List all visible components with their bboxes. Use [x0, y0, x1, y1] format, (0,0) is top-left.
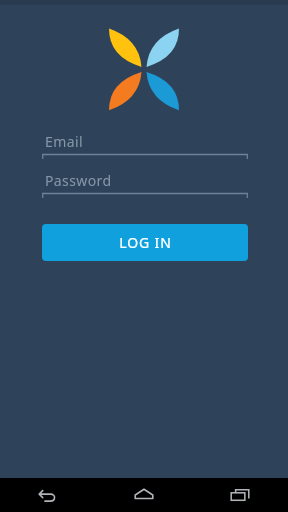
button[interactable]: LOG IN — [42, 224, 248, 261]
button[interactable]: Email — [42, 132, 248, 160]
button[interactable]: Home — [96, 478, 192, 512]
button[interactable]: Back — [0, 478, 96, 512]
staticText: Email — [45, 132, 83, 151]
button[interactable]: Password — [42, 171, 248, 199]
staticText: Password — [45, 171, 112, 190]
button[interactable]: Recent apps — [192, 478, 288, 512]
staticText: LOG IN — [119, 233, 172, 252]
